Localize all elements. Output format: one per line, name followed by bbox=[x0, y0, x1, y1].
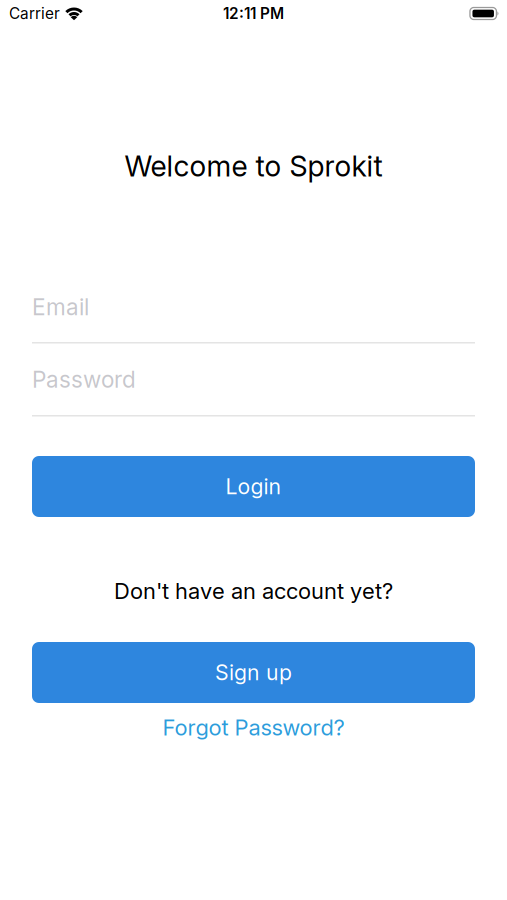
button[interactable]: Password bbox=[32, 364, 475, 394]
staticText: Sign up bbox=[215, 660, 292, 685]
button[interactable]: Sign up bbox=[32, 642, 475, 703]
staticText: 12:11 PM bbox=[223, 4, 284, 23]
staticText: Don't have an account yet? bbox=[114, 578, 393, 604]
button[interactable]: Forgot Password? bbox=[162, 711, 344, 744]
staticText: Email bbox=[32, 293, 89, 321]
staticText: Forgot Password? bbox=[162, 714, 344, 741]
staticText: Carrier bbox=[9, 4, 60, 23]
staticText: Welcome to Sprokit bbox=[124, 149, 382, 183]
staticText: Password bbox=[32, 366, 136, 393]
button[interactable]: Email bbox=[32, 292, 475, 322]
button[interactable]: Login bbox=[32, 456, 475, 517]
staticText: Login bbox=[225, 474, 281, 499]
